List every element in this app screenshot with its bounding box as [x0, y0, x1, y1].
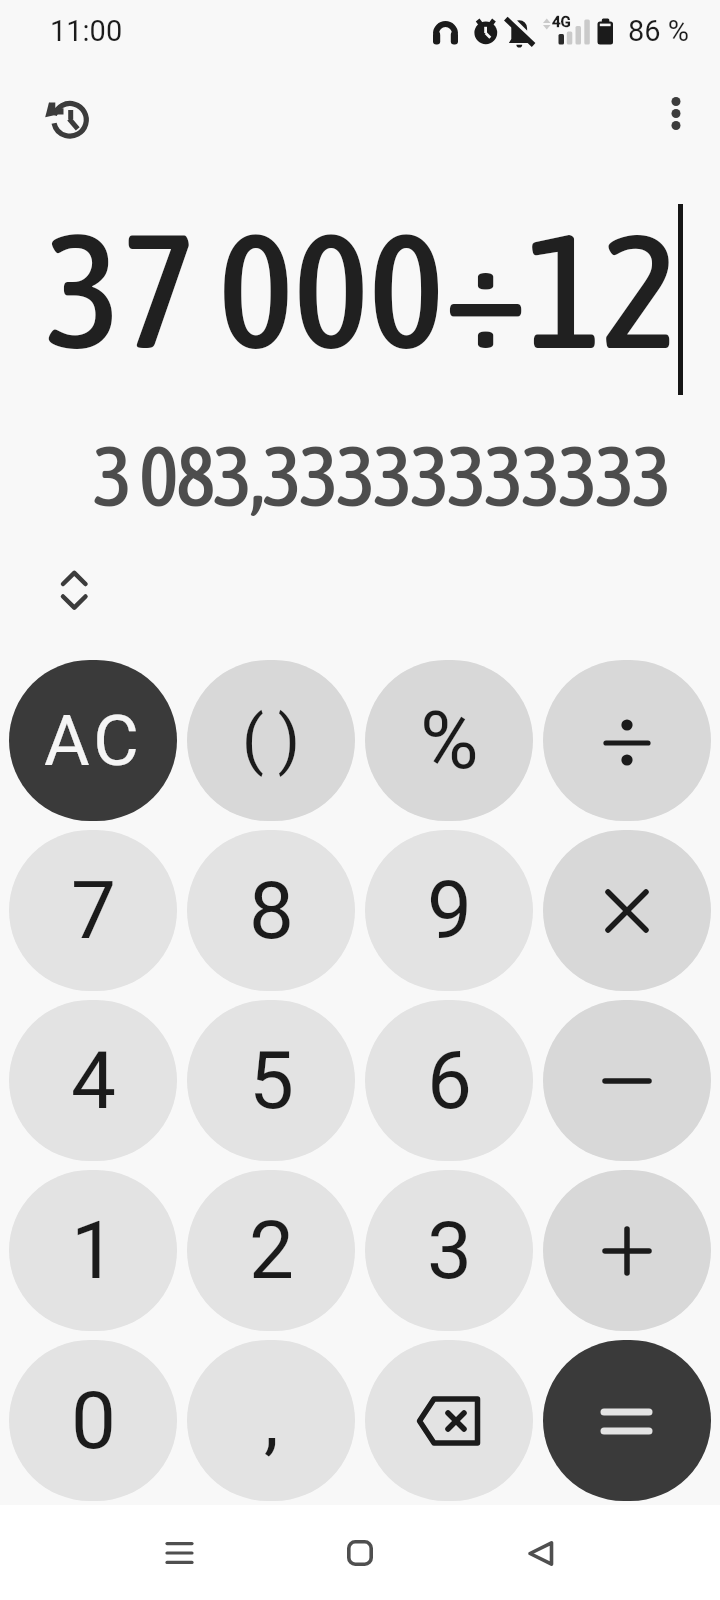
staticText: % — [420, 694, 479, 788]
button[interactable]: 5 — [187, 1000, 355, 1161]
button[interactable] — [50, 566, 98, 614]
button[interactable] — [152, 1525, 208, 1581]
button[interactable]: 1 — [9, 1170, 177, 1331]
staticText: 3 083,33333333333 — [93, 428, 670, 524]
button[interactable]: 8 — [187, 830, 355, 991]
staticText: 3 — [427, 1204, 472, 1298]
button[interactable]: AC — [9, 660, 177, 821]
button[interactable]: 9 — [365, 830, 533, 991]
button[interactable]: 0 — [9, 1340, 177, 1501]
staticText: AC — [44, 700, 143, 782]
button[interactable] — [543, 830, 711, 991]
staticText: , — [264, 1377, 279, 1464]
button[interactable]: 4 — [9, 1000, 177, 1161]
staticText: 11:00 — [50, 14, 123, 48]
staticText: 9 — [427, 864, 472, 958]
staticText: 6 — [427, 1034, 472, 1128]
button[interactable]: 2 — [187, 1170, 355, 1331]
staticText: 4 — [71, 1034, 116, 1128]
staticText: 86 % — [628, 14, 690, 48]
staticText: 0 — [71, 1374, 116, 1468]
button[interactable] — [365, 1340, 533, 1501]
button[interactable] — [543, 660, 711, 821]
staticText: 1 — [71, 1204, 116, 1298]
staticText: 4G — [552, 13, 571, 31]
staticText: 7 — [71, 864, 116, 958]
button[interactable] — [543, 1000, 711, 1161]
button[interactable]: 7 — [9, 830, 177, 991]
button[interactable] — [656, 88, 696, 140]
staticText: 37 000÷12 — [46, 199, 678, 382]
staticText: 8 — [249, 864, 294, 958]
button[interactable] — [512, 1525, 568, 1581]
button[interactable]: 6 — [365, 1000, 533, 1161]
button[interactable]: % — [365, 660, 533, 821]
button[interactable]: ( ) — [187, 660, 355, 821]
staticText: ( ) — [242, 703, 300, 778]
button[interactable] — [543, 1340, 711, 1501]
staticText: 5 — [249, 1034, 294, 1128]
button[interactable] — [332, 1525, 388, 1581]
button[interactable] — [39, 89, 91, 141]
button[interactable]: , — [187, 1340, 355, 1501]
button[interactable] — [543, 1170, 711, 1331]
staticText: 2 — [249, 1204, 294, 1298]
button[interactable]: 3 — [365, 1170, 533, 1331]
